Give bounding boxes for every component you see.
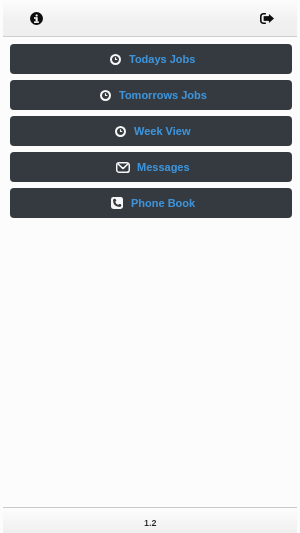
staticText: Messages	[137, 161, 190, 173]
staticText: Week View	[134, 125, 191, 137]
button[interactable]: Tomorrows Jobs	[10, 80, 292, 110]
button[interactable]: Log out	[254, 6, 279, 31]
staticText: 1.2	[144, 518, 157, 528]
button[interactable]: Messages	[10, 152, 292, 182]
staticText: Todays Jobs	[129, 53, 196, 65]
staticText: Tomorrows Jobs	[119, 89, 207, 101]
button[interactable]: Todays Jobs	[10, 44, 292, 74]
staticText: Phone Book	[131, 197, 196, 209]
button[interactable]: Week View	[10, 116, 292, 146]
button[interactable]: Info	[24, 6, 49, 31]
button[interactable]: Phone Book	[10, 188, 292, 218]
